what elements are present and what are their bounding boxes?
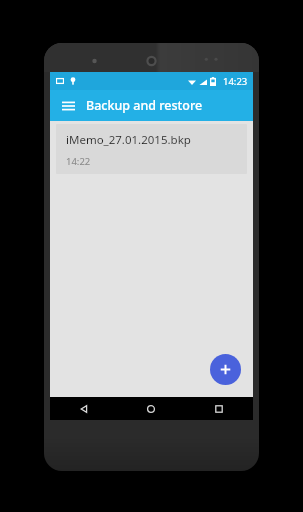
- button[interactable]: Back: [50, 397, 117, 420]
- staticText: iMemo_27.01.2015.bkp: [66, 132, 191, 148]
- staticText: Backup and restore: [86, 97, 203, 114]
- button[interactable]: Create backup: [210, 354, 241, 385]
- staticText: 14:22: [66, 155, 91, 168]
- button[interactable]: Recent apps: [185, 397, 253, 420]
- button[interactable]: iMemo_27.01.2015.bkp: [56, 124, 247, 174]
- staticText: 14:23: [223, 75, 248, 88]
- button[interactable]: Home: [117, 397, 185, 420]
- button[interactable]: Open navigation drawer: [58, 96, 78, 116]
